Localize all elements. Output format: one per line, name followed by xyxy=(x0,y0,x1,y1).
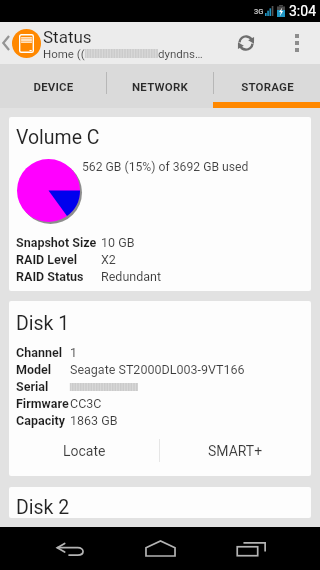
staticText: RAID Status xyxy=(16,269,84,284)
staticText: Redundant xyxy=(101,269,162,284)
staticText: 562 GB (15%) of 3692 GB used xyxy=(82,160,249,174)
staticText: STORAGE xyxy=(241,80,294,93)
staticText: NETWORK xyxy=(132,80,188,93)
button[interactable]: NETWORK xyxy=(107,64,213,102)
staticText: Disk 1 xyxy=(16,312,70,335)
staticText: 3G xyxy=(254,7,264,16)
button[interactable]: Refresh xyxy=(236,22,278,64)
staticText: DEVICE xyxy=(33,80,74,93)
staticText: 1863 GB xyxy=(70,413,118,428)
staticText: Snapshot Size xyxy=(16,235,97,250)
staticText: SMART+ xyxy=(208,443,263,459)
staticText: Home (( xyxy=(43,47,85,60)
staticText: Firmware xyxy=(16,396,69,411)
staticText: Seagate ST2000DL003-9VT166 xyxy=(70,362,245,377)
staticText: 3:04 xyxy=(289,3,316,19)
button[interactable]: Locate xyxy=(9,434,159,467)
button[interactable]: Recent apps xyxy=(206,527,296,570)
button[interactable]: More options xyxy=(278,22,320,64)
button[interactable]: Home xyxy=(115,527,205,570)
staticText: 10 GB xyxy=(101,235,135,250)
staticText: dyndns… xyxy=(158,47,203,60)
button[interactable]: Back xyxy=(26,527,116,570)
staticText: Capacity xyxy=(16,413,65,428)
button[interactable]: STORAGE xyxy=(214,64,320,102)
staticText: CC3C xyxy=(70,396,102,411)
button[interactable]: DEVICE xyxy=(0,64,106,102)
staticText: X2 xyxy=(101,252,116,267)
staticText: Volume C xyxy=(16,126,100,149)
button[interactable]: SMART+ xyxy=(160,434,311,467)
button[interactable]: Navigate up xyxy=(0,22,43,64)
staticText: Status xyxy=(43,27,92,47)
staticText: 1 xyxy=(70,345,78,360)
staticText: Locate xyxy=(63,443,106,459)
staticText: Disk 2 xyxy=(16,496,70,518)
staticText: Channel xyxy=(16,345,62,360)
staticText: Serial xyxy=(16,379,49,394)
staticText: RAID Level xyxy=(16,252,78,267)
staticText: Model xyxy=(16,362,52,377)
